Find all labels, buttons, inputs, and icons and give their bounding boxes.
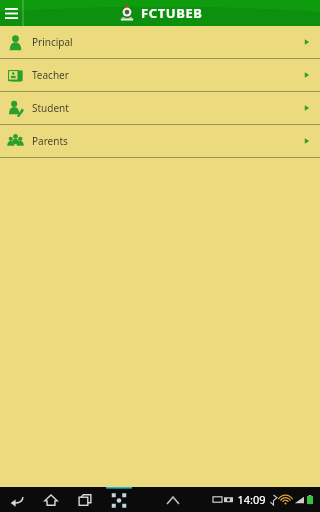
button[interactable]: Student: [0, 92, 320, 124]
button[interactable]: Teacher: [0, 59, 320, 91]
button[interactable]: Back: [6, 489, 28, 511]
staticText: 14:09: [237, 492, 266, 507]
staticText: FCTUBEB: [141, 4, 203, 22]
button[interactable]: Screenshot: [106, 487, 132, 512]
button[interactable]: Recent apps: [74, 489, 96, 511]
button[interactable]: Home: [40, 489, 62, 511]
staticText: Teacher: [32, 68, 69, 82]
staticText: Principal: [32, 35, 73, 49]
staticText: Student: [32, 101, 69, 115]
button[interactable]: Expand: [162, 489, 184, 511]
button[interactable]: Open navigation menu: [0, 0, 23, 26]
button[interactable]: Principal: [0, 26, 320, 58]
button[interactable]: Parents: [0, 125, 320, 157]
staticText: Parents: [32, 134, 68, 148]
